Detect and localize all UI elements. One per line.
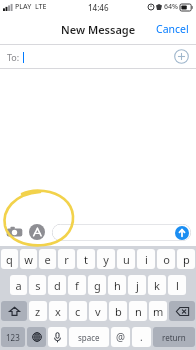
staticText: f	[75, 278, 79, 293]
button[interactable]: e	[39, 249, 56, 269]
button[interactable]: Backspace	[169, 301, 195, 321]
staticText: d	[54, 278, 61, 293]
staticText: l	[176, 278, 179, 293]
staticText: h	[114, 278, 121, 293]
staticText: z	[35, 304, 41, 319]
staticText: space	[78, 332, 100, 343]
button[interactable]: f	[68, 275, 86, 295]
button[interactable]: m	[149, 301, 167, 321]
staticText: .	[140, 330, 143, 344]
staticText: m	[153, 304, 164, 319]
button[interactable]: space	[69, 327, 109, 347]
staticText: r	[64, 252, 69, 267]
button[interactable]: App Store	[28, 223, 46, 241]
button[interactable]: c	[69, 301, 87, 321]
staticText: v	[95, 304, 101, 319]
button[interactable]: Camera	[5, 223, 23, 241]
button[interactable]: k	[148, 275, 166, 295]
button[interactable]: d	[48, 275, 66, 295]
staticText: Cancel	[156, 22, 189, 36]
staticText: PLAY	[15, 2, 32, 12]
button[interactable]: r	[58, 249, 75, 269]
button[interactable]: l	[168, 275, 186, 295]
staticText: i	[145, 252, 148, 267]
staticText: LTE	[35, 2, 47, 12]
staticText: 123	[6, 332, 20, 343]
button[interactable]: a	[10, 275, 27, 295]
button[interactable]: 123	[1, 327, 25, 347]
button[interactable]: z	[29, 301, 47, 321]
button[interactable]: x	[49, 301, 67, 321]
button[interactable]: g	[88, 275, 106, 295]
button[interactable]: o	[157, 249, 175, 269]
button[interactable]: j	[128, 275, 146, 295]
button[interactable]: q	[1, 249, 18, 269]
button[interactable]: Change keyboard	[27, 327, 46, 347]
button[interactable]: y	[97, 249, 115, 269]
staticText: 64%	[164, 2, 178, 12]
staticText: a	[15, 278, 22, 293]
staticText: t	[84, 252, 88, 267]
button[interactable]: v	[89, 301, 107, 321]
staticText: x	[55, 304, 61, 319]
button[interactable]: i	[137, 249, 155, 269]
staticText: @	[116, 330, 125, 344]
staticText: s	[35, 278, 41, 293]
button[interactable]: @	[111, 327, 130, 347]
button[interactable]: u	[117, 249, 135, 269]
button[interactable]: Send	[52, 224, 191, 241]
staticText: u	[123, 252, 130, 267]
button[interactable]: h	[108, 275, 126, 295]
staticText: p	[183, 252, 190, 267]
staticText: w	[24, 252, 33, 267]
staticText: 14:46	[88, 2, 109, 13]
staticText: q	[6, 252, 13, 267]
staticText: b	[115, 304, 122, 319]
button[interactable]: .	[132, 327, 151, 347]
staticText: o	[163, 252, 170, 267]
staticText: New Message	[61, 22, 136, 37]
button[interactable]: Send	[175, 226, 189, 240]
staticText: c	[75, 304, 81, 319]
button[interactable]: n	[129, 301, 147, 321]
staticText: To:	[7, 51, 20, 63]
staticText: k	[154, 278, 160, 293]
button[interactable]: return	[153, 327, 195, 347]
button[interactable]: w	[20, 249, 37, 269]
button[interactable]: Cancel	[149, 17, 196, 41]
staticText: e	[44, 252, 51, 267]
staticText: j	[136, 278, 139, 293]
button[interactable]: b	[109, 301, 127, 321]
staticText: return	[162, 332, 186, 343]
button[interactable]: t	[77, 249, 95, 269]
button[interactable]: Dictate	[48, 327, 67, 347]
button[interactable]: p	[177, 249, 195, 269]
button[interactable]: Shift	[1, 301, 27, 321]
staticText: y	[103, 252, 109, 267]
button[interactable]: Add contact	[174, 49, 189, 64]
staticText: n	[135, 304, 142, 319]
button[interactable]: s	[29, 275, 46, 295]
staticText: g	[94, 278, 101, 293]
